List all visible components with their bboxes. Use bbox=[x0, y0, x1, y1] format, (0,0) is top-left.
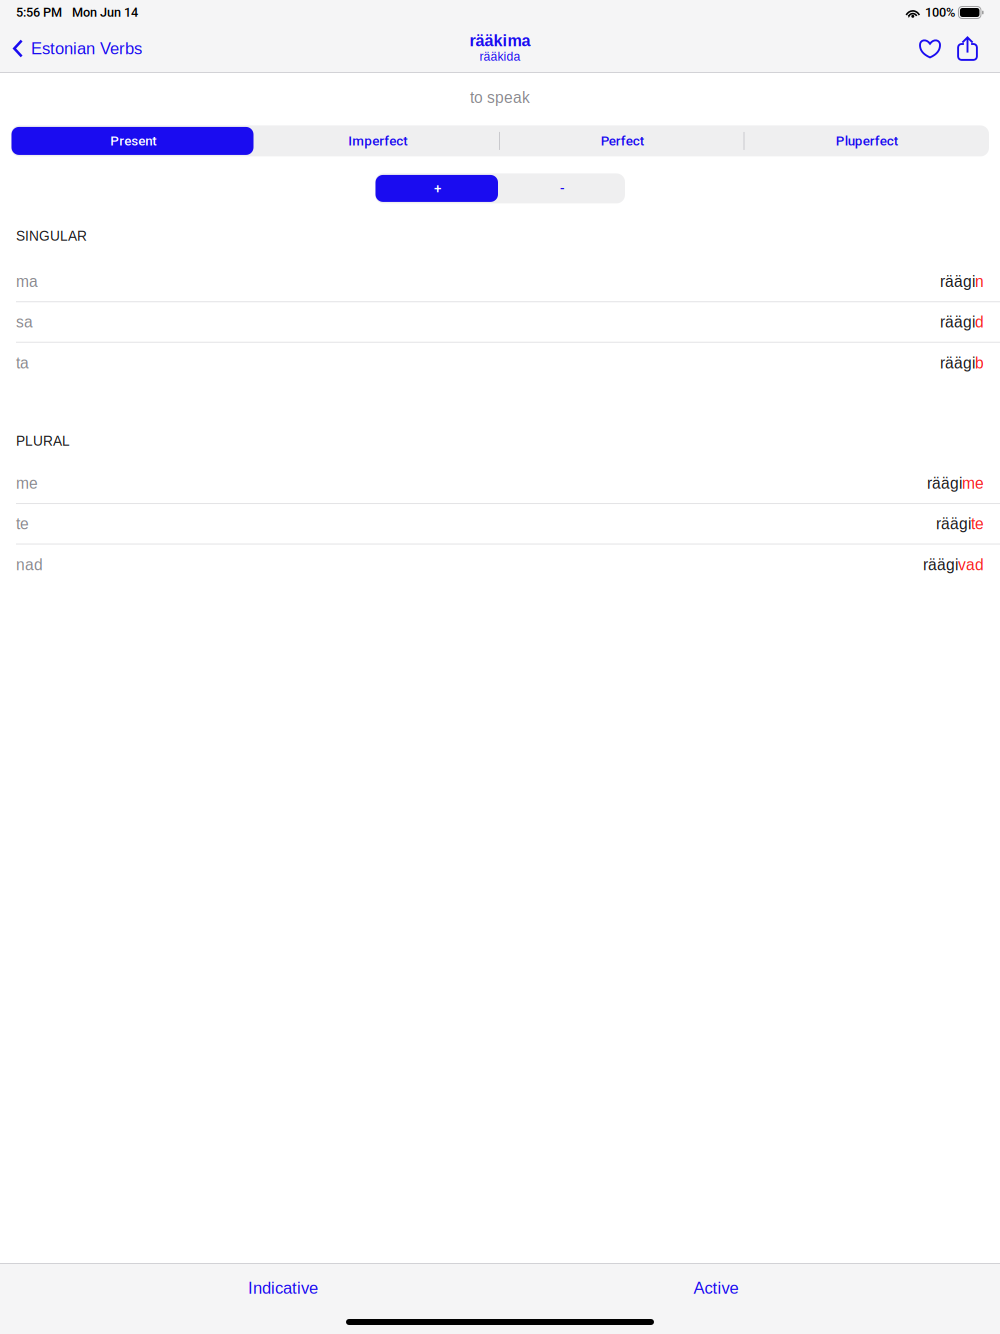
button[interactable]: Pluperfect bbox=[744, 125, 989, 156]
staticText: PLURAL bbox=[16, 433, 70, 448]
staticText: räägi bbox=[927, 475, 962, 492]
staticText: 100% bbox=[925, 5, 955, 20]
staticText: Active bbox=[693, 1279, 738, 1297]
button[interactable]: - bbox=[500, 173, 625, 203]
button[interactable]: Favourite bbox=[904, 25, 948, 72]
button[interactable]: Perfect bbox=[500, 125, 744, 156]
staticText: Estonian Verbs bbox=[31, 39, 142, 58]
staticText: - bbox=[560, 181, 565, 196]
staticText: me bbox=[962, 475, 984, 492]
button[interactable]: te bbox=[0, 504, 1000, 543]
button[interactable]: nad bbox=[0, 544, 1000, 585]
staticText: Mon Jun 14 bbox=[72, 5, 138, 20]
staticText: rääkima bbox=[469, 32, 530, 50]
staticText: to speak bbox=[470, 89, 530, 106]
staticText: nad bbox=[16, 556, 43, 573]
staticText: Pluperfect bbox=[836, 133, 898, 149]
staticText: sa bbox=[16, 313, 33, 331]
button[interactable]: Estonian Verbs bbox=[0, 25, 152, 72]
button[interactable]: ta bbox=[0, 343, 1000, 383]
staticText: te bbox=[16, 515, 29, 532]
staticText: rääkida bbox=[479, 50, 520, 63]
staticText: n bbox=[975, 273, 984, 290]
staticText: räägi bbox=[940, 313, 975, 331]
button[interactable]: Imperfect bbox=[255, 125, 500, 156]
button[interactable]: Active bbox=[641, 1273, 791, 1303]
staticText: me bbox=[16, 475, 38, 492]
staticText: räägi bbox=[940, 354, 975, 372]
staticText: d bbox=[975, 313, 984, 331]
button[interactable]: Indicative bbox=[208, 1273, 358, 1303]
staticText: ma bbox=[16, 273, 38, 290]
staticText: Perfect bbox=[601, 133, 644, 149]
button[interactable]: me bbox=[0, 463, 1000, 503]
staticText: 5:56 PM bbox=[16, 5, 62, 20]
staticText: + bbox=[434, 181, 441, 196]
button[interactable]: + bbox=[375, 173, 500, 203]
staticText: ta bbox=[16, 354, 29, 372]
staticText: te bbox=[971, 515, 984, 532]
button[interactable]: Share bbox=[948, 25, 989, 72]
staticText: räägi bbox=[923, 556, 958, 573]
staticText: Present bbox=[110, 133, 156, 149]
staticText: räägi bbox=[936, 515, 971, 532]
button[interactable]: sa bbox=[0, 302, 1000, 342]
staticText: b bbox=[975, 354, 984, 372]
staticText: Indicative bbox=[248, 1279, 318, 1297]
staticText: Imperfect bbox=[348, 133, 407, 149]
staticText: vad bbox=[958, 556, 984, 573]
button[interactable]: ma bbox=[0, 262, 1000, 301]
staticText: SINGULAR bbox=[16, 228, 87, 244]
staticText: räägi bbox=[940, 273, 975, 290]
button[interactable]: Present bbox=[11, 125, 255, 156]
